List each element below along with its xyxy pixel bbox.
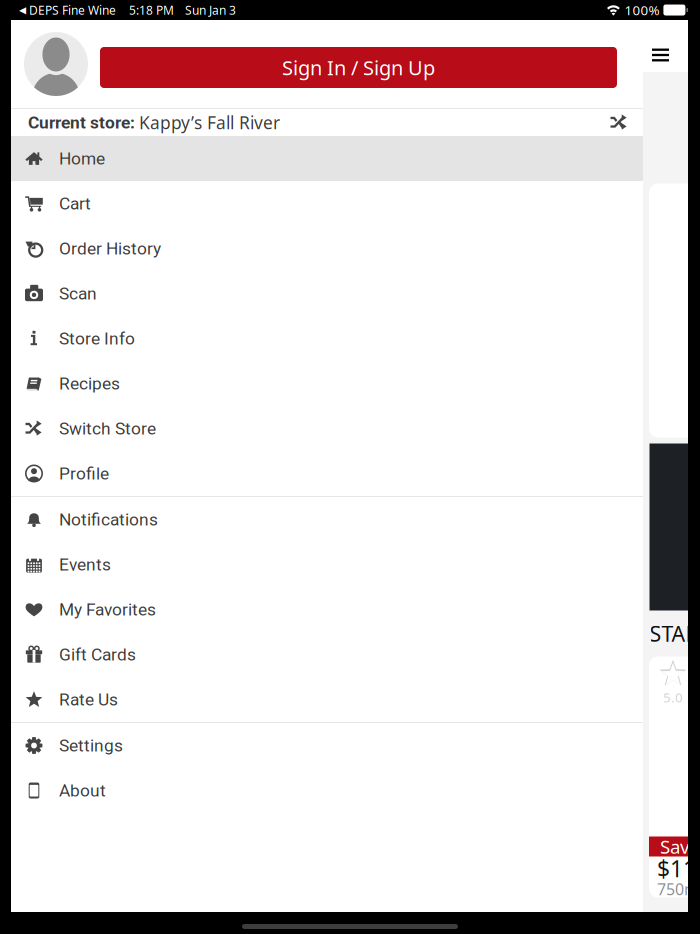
staticText: $11.99 [657, 853, 700, 883]
staticText: Scan [59, 283, 97, 304]
staticText: Profile [59, 463, 109, 484]
staticText: Current store: [28, 112, 139, 133]
button[interactable]: Gift Cards [11, 632, 643, 677]
staticText: Home [59, 148, 105, 169]
button[interactable]: Order History [11, 226, 643, 271]
button[interactable]: Home [11, 136, 643, 181]
button[interactable]: Current store: [11, 109, 643, 136]
button[interactable]: About [11, 768, 643, 813]
button[interactable]: My Favorites [11, 587, 643, 632]
button[interactable]: Recipes [11, 361, 643, 406]
staticText: My Favorites [59, 599, 156, 620]
staticText: Gift Cards [59, 644, 136, 665]
button[interactable]: Store Info [11, 316, 643, 361]
staticText: Recipes [59, 373, 120, 394]
button[interactable]: Events [11, 542, 643, 587]
button[interactable]: Profile [11, 451, 643, 496]
button[interactable]: Switch Store [11, 406, 643, 451]
staticText: About [59, 780, 106, 801]
staticText: Switch Store [59, 418, 156, 439]
staticText: Sun Jan 3 [185, 2, 236, 18]
button[interactable]: Settings [11, 723, 643, 768]
button[interactable]: Rate Us [11, 677, 643, 722]
staticText: 5.0 [663, 688, 683, 706]
staticText: Rate Us [59, 689, 118, 710]
staticText: ◀ [19, 5, 26, 15]
button[interactable]: Menu [643, 20, 688, 72]
staticText: Settings [59, 735, 123, 756]
staticText: 100% [624, 1, 659, 19]
staticText: 5:18 PM [129, 2, 174, 18]
staticText: Save 15% [660, 834, 700, 859]
staticText: Cart [59, 193, 91, 214]
staticText: DEPS Fine Wine [29, 2, 116, 18]
staticText: Order History [59, 238, 161, 259]
staticText: STARBOROUGH [649, 619, 700, 648]
staticText: 750ml [657, 878, 700, 900]
staticText: Sign In / Sign Up [282, 54, 435, 81]
staticText: Events [59, 554, 111, 575]
staticText: Notifications [59, 509, 158, 530]
button[interactable]: Cart [11, 181, 643, 226]
button[interactable]: Sign In / Sign Up [100, 47, 617, 88]
staticText: Store Info [59, 328, 135, 349]
staticText: Kappy’s Fall River [139, 111, 280, 134]
button[interactable]: Notifications [11, 497, 643, 542]
button[interactable]: Scan [11, 271, 643, 316]
